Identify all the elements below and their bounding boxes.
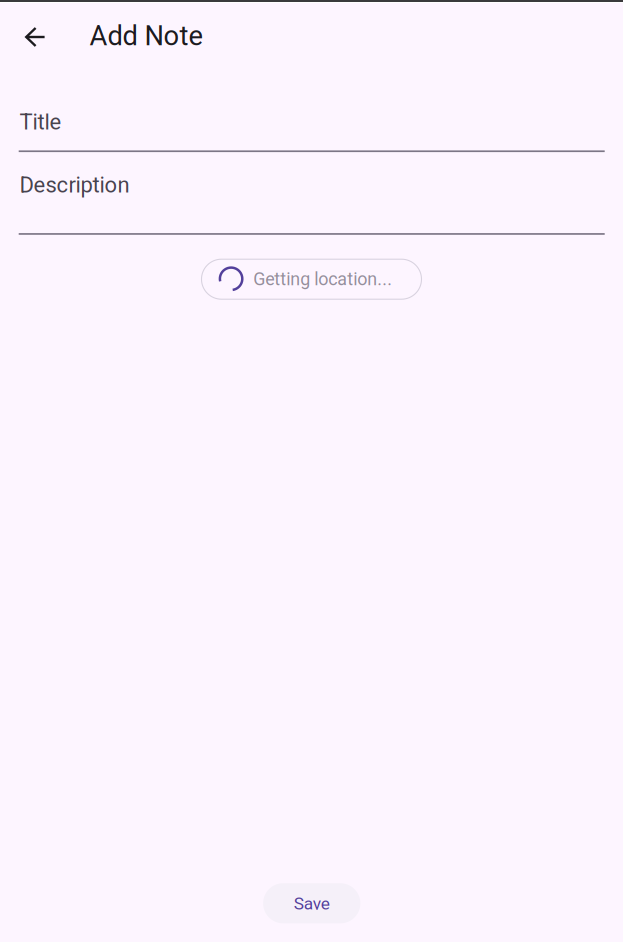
- staticText: Title: [20, 109, 62, 135]
- staticText: Getting location...: [253, 269, 392, 289]
- button[interactable]: Save: [263, 883, 360, 923]
- staticText: Description: [20, 172, 130, 198]
- staticText: Save: [294, 893, 330, 914]
- staticText: Add Note: [90, 20, 203, 52]
- button[interactable]: Back: [13, 15, 57, 59]
